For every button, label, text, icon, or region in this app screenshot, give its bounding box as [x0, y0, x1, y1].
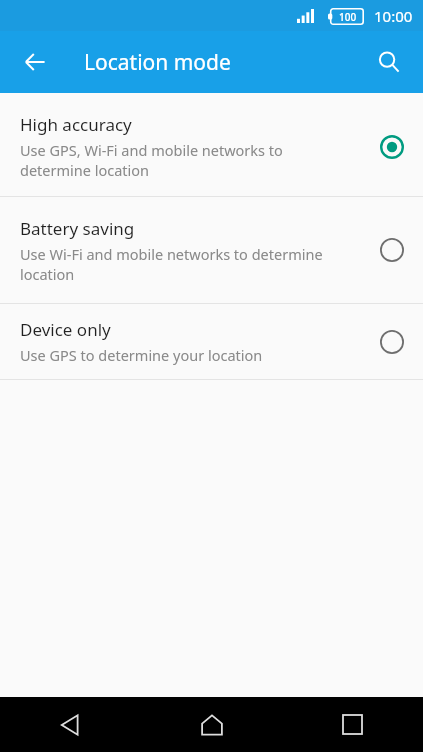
- button[interactable]: Back: [0, 697, 141, 752]
- button[interactable]: Battery saving: [0, 197, 423, 303]
- button[interactable]: High accuracy: [0, 97, 423, 196]
- button[interactable]: Device only: [0, 304, 423, 379]
- staticText: Location mode: [84, 48, 231, 77]
- staticText: Battery saving: [20, 217, 135, 240]
- button[interactable]: Home: [141, 697, 282, 752]
- staticText: Use GPS to determine your location: [20, 345, 263, 365]
- staticText: High accuracy: [20, 113, 132, 136]
- staticText: Use GPS, Wi-Fi and mobile networks to de…: [20, 140, 283, 180]
- staticText: 100: [339, 10, 357, 24]
- staticText: Device only: [20, 318, 111, 341]
- staticText: 10:00: [374, 6, 413, 26]
- button[interactable]: Back: [8, 35, 62, 89]
- button[interactable]: Search: [363, 36, 415, 88]
- staticText: Use Wi-Fi and mobile networks to determi…: [20, 244, 323, 284]
- button[interactable]: Recent apps: [282, 697, 423, 752]
